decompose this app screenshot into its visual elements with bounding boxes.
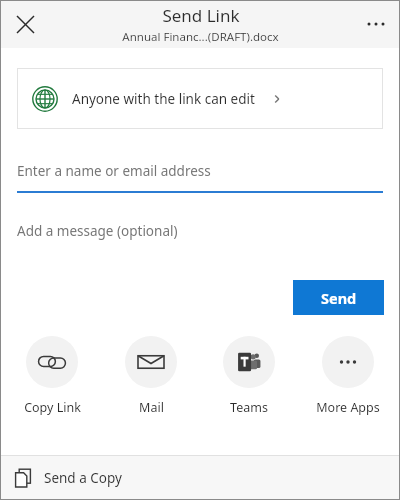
staticText: Teams (230, 399, 268, 416)
button[interactable]: Add a message (optional) (0, 219, 400, 243)
staticText: Mail (139, 399, 164, 416)
button[interactable]: Send (293, 280, 384, 315)
button[interactable]: Teams (211, 336, 287, 416)
staticText: Send Link (162, 4, 240, 27)
button[interactable]: Close (6, 5, 44, 43)
button[interactable]: Anyone with the link can edit (17, 68, 383, 129)
button[interactable]: Copy Link (14, 336, 90, 416)
staticText: Send (321, 288, 357, 308)
staticText: Anyone with the link can edit (72, 90, 255, 108)
staticText: Enter a name or email address (17, 162, 211, 180)
staticText: More Apps (316, 399, 380, 416)
button[interactable]: Send a Copy (0, 456, 400, 500)
staticText: Add a message (optional) (17, 222, 178, 240)
button[interactable]: More options (356, 4, 396, 44)
staticText: Copy Link (24, 399, 81, 416)
staticText: Send a Copy (44, 469, 122, 487)
staticText: Annual Financ...(DRAFT).docx (122, 29, 279, 45)
button[interactable]: Enter a name or email address (0, 160, 400, 193)
button[interactable]: More Apps (310, 336, 386, 416)
button[interactable]: Mail (113, 336, 189, 416)
